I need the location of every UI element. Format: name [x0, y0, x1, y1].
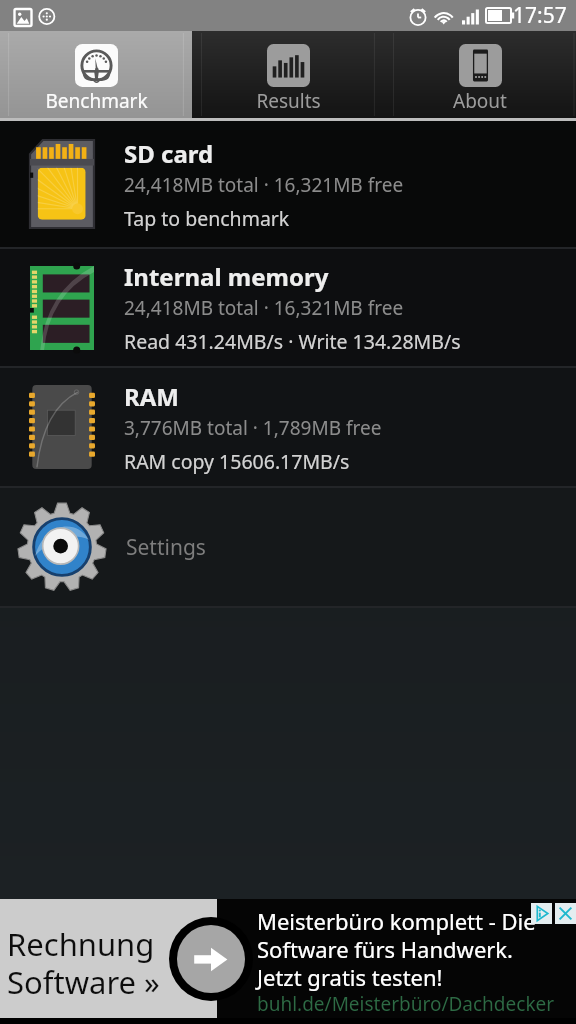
button[interactable]: Internal memory — [0, 249, 576, 366]
button[interactable]: Results — [192, 31, 384, 118]
staticText: RAM — [124, 380, 179, 413]
staticText: 24,418MB total · 16,321MB free — [124, 172, 404, 198]
staticText: About — [453, 88, 507, 114]
staticText: Software fürs Handwerk. — [257, 934, 514, 964]
staticText: Internal memory — [124, 260, 329, 293]
staticText: Software » — [7, 961, 160, 1003]
staticText: Meisterbüro komplett - Die — [257, 906, 536, 936]
button[interactable]: Settings — [0, 488, 576, 606]
staticText: Settings — [126, 533, 206, 562]
button[interactable]: SD card — [0, 121, 576, 247]
staticText: Results — [256, 88, 321, 114]
button[interactable]: About — [384, 31, 576, 118]
button[interactable]: Ad choices — [531, 903, 552, 924]
button[interactable]: Rechnung — [0, 899, 576, 1018]
staticText: 24,418MB total · 16,321MB free — [124, 295, 404, 321]
staticText: SD card — [124, 137, 214, 170]
staticText: 17:57 — [513, 1, 567, 30]
staticText: Jetzt gratis testen! — [257, 962, 443, 992]
button[interactable]: Open advertisement — [169, 917, 253, 1001]
staticText: Read 431.24MB/s · Write 134.28MB/s — [124, 328, 461, 355]
staticText: 3,776MB total · 1,789MB free — [124, 415, 382, 441]
button[interactable]: Benchmark — [0, 31, 192, 118]
staticText: Tap to benchmark — [124, 205, 290, 232]
staticText: Benchmark — [45, 88, 148, 114]
staticText: Rechnung — [7, 923, 155, 965]
staticText: buhl.de/Meisterbüro/Dachdecker — [257, 991, 555, 1017]
staticText: RAM copy 15606.17MB/s — [124, 448, 350, 475]
button[interactable]: Close ad — [555, 903, 576, 924]
button[interactable]: RAM — [0, 368, 576, 486]
